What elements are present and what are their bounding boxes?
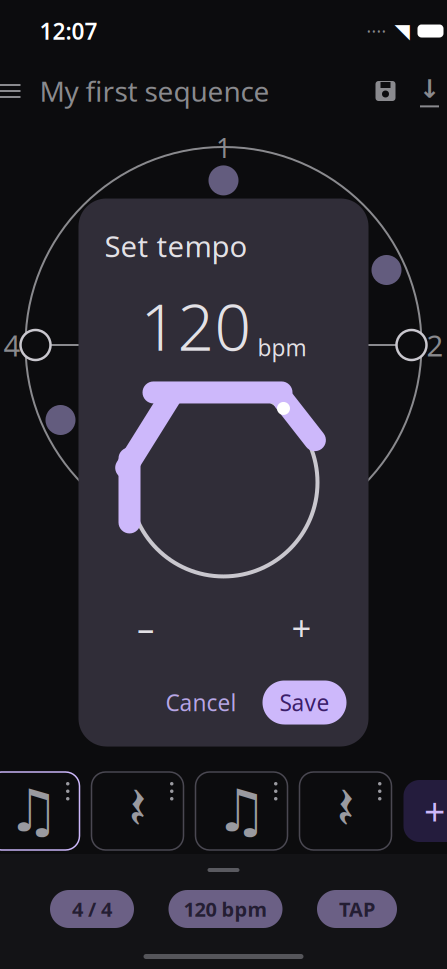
staticText: ↓ bbox=[419, 75, 440, 103]
staticText: 12:07 bbox=[39, 16, 97, 46]
button[interactable]: Add step bbox=[403, 780, 447, 842]
button[interactable]: TAP bbox=[317, 890, 397, 928]
button[interactable]: Download bbox=[407, 69, 447, 113]
staticText: ···· bbox=[366, 19, 386, 42]
button[interactable]: Decrease tempo bbox=[118, 604, 172, 650]
staticText: – bbox=[137, 604, 154, 650]
button[interactable]: 𝄽 bbox=[91, 772, 183, 850]
staticText: + bbox=[291, 604, 311, 650]
staticText: Cancel bbox=[165, 687, 236, 717]
staticText: 1 bbox=[216, 130, 231, 165]
staticText: 120 bbox=[140, 283, 251, 368]
button[interactable]: Save bbox=[262, 680, 346, 724]
button[interactable]: ♫ bbox=[195, 772, 287, 850]
button[interactable]: Menu bbox=[0, 69, 37, 113]
staticText: ◥ bbox=[394, 20, 409, 42]
staticText: 4 / 4 bbox=[72, 896, 112, 922]
staticText: TAP bbox=[339, 896, 375, 922]
staticText: Save bbox=[279, 687, 329, 717]
button[interactable]: Increase tempo bbox=[274, 604, 328, 650]
button[interactable]: 𝄽 bbox=[299, 772, 391, 850]
button[interactable]: 120 bpm bbox=[168, 890, 282, 928]
staticText: 2 bbox=[426, 325, 443, 364]
staticText: 120 bpm bbox=[183, 896, 267, 922]
staticText: 4 bbox=[3, 325, 20, 364]
staticText: ♫ bbox=[215, 778, 268, 844]
staticText: ♫ bbox=[7, 778, 60, 844]
staticText: bpm bbox=[257, 332, 306, 362]
staticText: Set tempo bbox=[104, 226, 247, 265]
button[interactable]: Save bbox=[363, 69, 407, 113]
button[interactable]: 4 / 4 bbox=[50, 890, 134, 928]
button[interactable]: Cancel bbox=[149, 680, 252, 724]
staticText: 𝄽 bbox=[336, 782, 354, 840]
button[interactable]: ♫ bbox=[0, 772, 79, 850]
staticText: 𝄽 bbox=[128, 782, 146, 840]
staticText: My first sequence bbox=[39, 72, 269, 110]
staticText: + bbox=[424, 786, 445, 836]
